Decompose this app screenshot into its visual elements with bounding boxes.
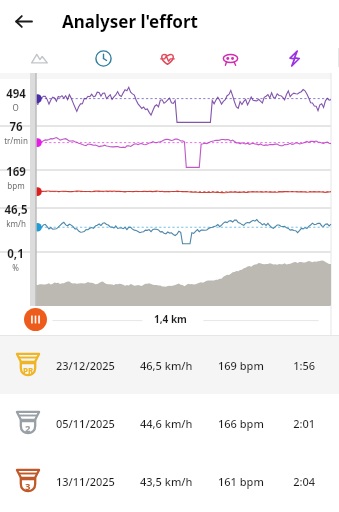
staticText: 0,1 <box>7 246 24 262</box>
button[interactable]: Cadence <box>215 43 245 73</box>
button[interactable]: 2 <box>0 394 339 452</box>
staticText: 1:56 <box>284 358 315 373</box>
staticText: Analyser l'effort <box>62 10 198 33</box>
button[interactable]: Power <box>279 43 309 73</box>
button[interactable]: 3 <box>0 452 339 510</box>
staticText: 2:04 <box>284 474 315 489</box>
staticText: tr/min <box>4 135 28 146</box>
staticText: 2 <box>25 422 31 435</box>
staticText: 23/12/2025 <box>56 358 140 373</box>
button[interactable]: Time <box>88 43 118 73</box>
staticText: 494 <box>6 86 26 102</box>
staticText: O <box>12 102 19 113</box>
staticText: PR <box>23 365 34 376</box>
staticText: 2:01 <box>284 416 315 431</box>
staticText: km/h <box>6 218 26 229</box>
staticText: 43,5 km/h <box>140 474 218 489</box>
staticText: 05/11/2025 <box>56 416 140 431</box>
staticText: 44,6 km/h <box>140 416 218 431</box>
staticText: 3 <box>25 480 31 493</box>
staticText: 166 bpm <box>218 416 284 431</box>
staticText: 13/11/2025 <box>56 474 140 489</box>
staticText: 1,4 km <box>154 312 187 326</box>
staticText: 46,5 km/h <box>140 358 218 373</box>
staticText: 46,5 <box>4 202 28 218</box>
staticText: % <box>12 262 19 273</box>
button[interactable]: Elevation <box>24 43 54 73</box>
staticText: 76 <box>9 119 23 135</box>
button[interactable]: Heart rate <box>152 43 182 73</box>
staticText: 169 <box>6 164 26 180</box>
staticText: 169 bpm <box>218 358 284 373</box>
button[interactable]: PR <box>0 336 339 394</box>
staticText: 161 bpm <box>218 474 284 489</box>
staticText: bpm <box>7 180 25 191</box>
button[interactable]: Scrubber <box>24 308 47 331</box>
button[interactable]: Back <box>8 6 38 36</box>
